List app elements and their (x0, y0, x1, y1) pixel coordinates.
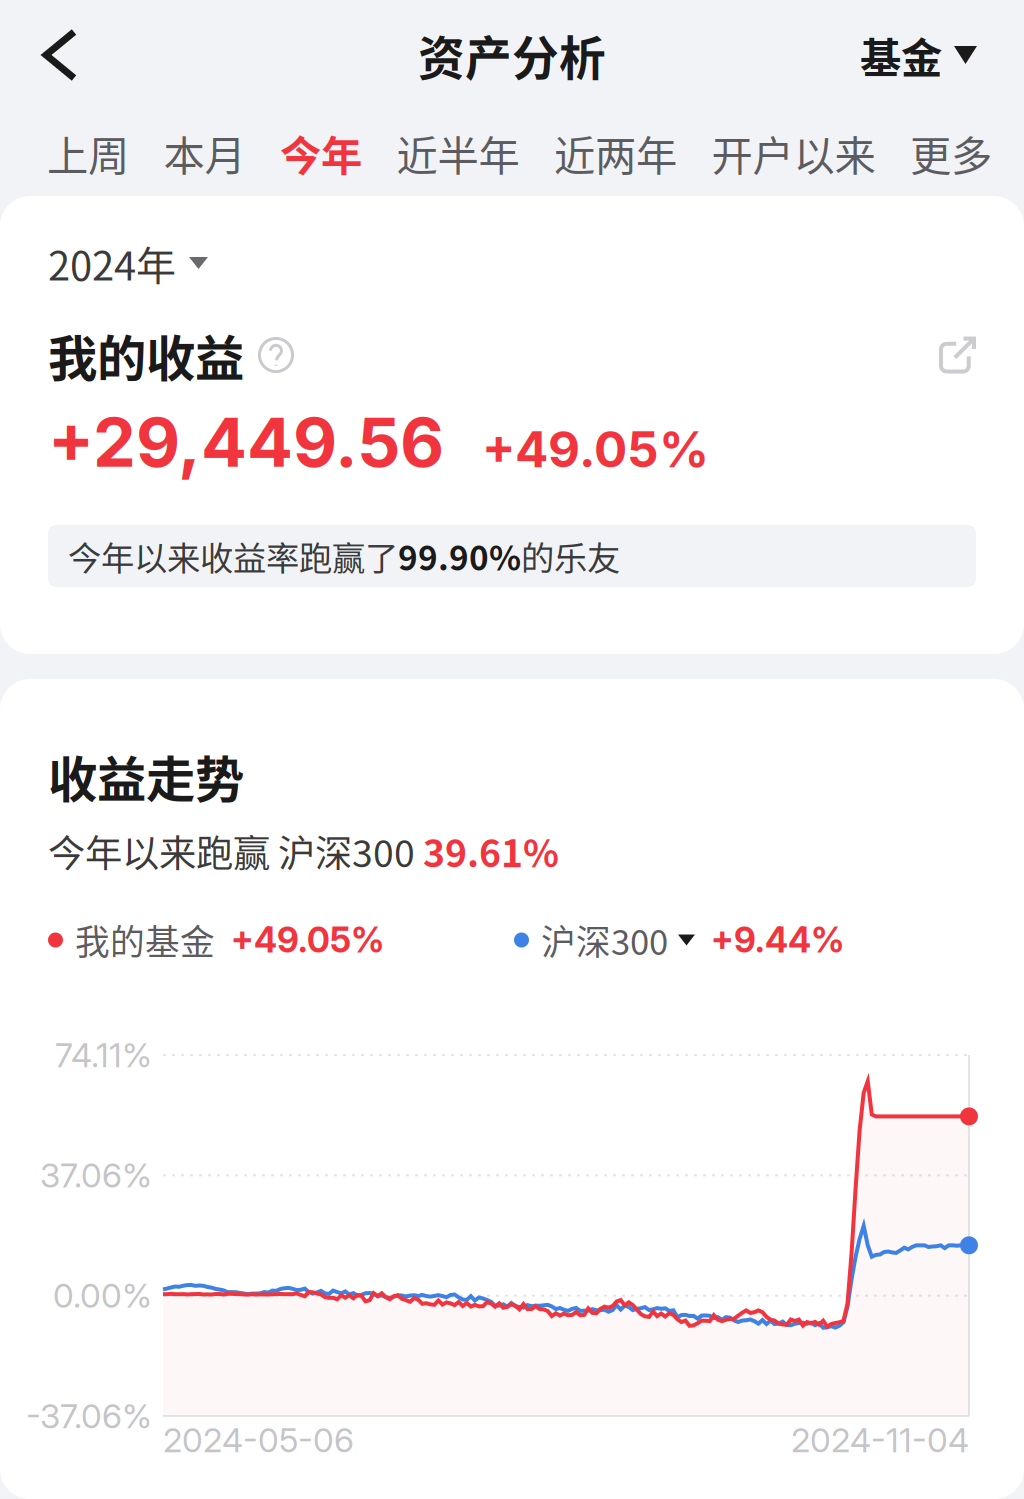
staticText: 2024-05-06 (163, 1420, 354, 1460)
staticText: 今年以来跑赢 沪深300 (48, 824, 423, 878)
button[interactable]: 近两年 (554, 110, 677, 196)
staticText: 0.00% (53, 1275, 152, 1316)
staticText: +29,449.56 (48, 401, 444, 483)
button[interactable]: 本月 (163, 110, 245, 196)
button[interactable]: 上周 (47, 110, 129, 196)
staticText: 本月 (163, 123, 245, 183)
staticText: 2024年 (48, 234, 176, 292)
staticText: 74.11% (55, 1035, 152, 1075)
staticText: 近两年 (554, 123, 677, 183)
staticText: 资产分析 (418, 21, 606, 89)
button[interactable]: 开户以来 (711, 110, 875, 196)
staticText: 今年 (280, 123, 362, 183)
staticText: 2024-11-04 (791, 1420, 969, 1460)
staticText: 近半年 (396, 123, 519, 183)
staticText: +9.44% (711, 919, 844, 961)
button[interactable]: 基金 (860, 0, 1024, 110)
staticText: 39.61% (423, 824, 559, 878)
staticText: 的乐友 (521, 532, 620, 580)
button[interactable]: 近半年 (396, 110, 519, 196)
button[interactable]: Open in new page (929, 326, 976, 383)
button[interactable]: Back (0, 0, 108, 110)
staticText: 开户以来 (711, 123, 875, 183)
staticText: 37.06% (40, 1155, 152, 1195)
button[interactable]: 今年 (280, 110, 362, 196)
staticText: 收益走势 (48, 740, 244, 812)
staticText: 我的收益 (48, 319, 244, 391)
staticText: 基金 (860, 25, 942, 85)
staticText: 更多 (910, 123, 992, 183)
staticText: 今年以来收益率跑赢了 (68, 532, 398, 580)
staticText: 99.90% (398, 532, 521, 580)
staticText: 沪深300 (541, 915, 668, 965)
button[interactable]: Change comparison index (668, 934, 705, 945)
staticText: 我的基金 (75, 915, 215, 965)
staticText: 上周 (47, 123, 129, 183)
staticText: +49.05% (231, 919, 384, 961)
button[interactable]: 2024年 (48, 196, 976, 320)
staticText: +49.05% (482, 419, 709, 479)
staticText: -37.06% (26, 1396, 152, 1436)
button[interactable]: 更多 (910, 110, 992, 196)
